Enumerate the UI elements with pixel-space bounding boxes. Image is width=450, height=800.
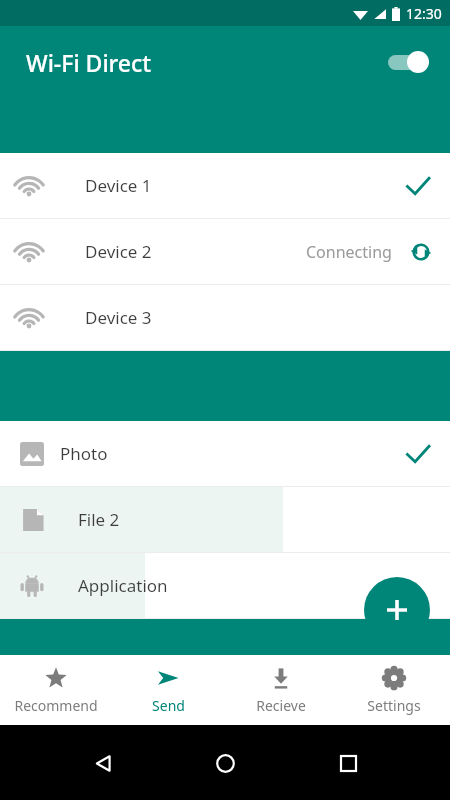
button[interactable]: Application	[0, 553, 450, 618]
staticText: Device 3	[85, 306, 152, 329]
staticText: Application	[78, 574, 168, 597]
staticText: Send	[152, 696, 185, 715]
staticText: Recieve	[256, 696, 306, 715]
staticText: Photo	[60, 442, 108, 465]
button[interactable]: Recents	[328, 743, 368, 783]
button[interactable]: Wi-Fi Direct toggle	[384, 45, 436, 79]
button[interactable]: Recommend	[0, 655, 112, 725]
button[interactable]: Add	[364, 577, 430, 643]
staticText: Connecting	[306, 241, 392, 263]
button[interactable]: Device 3	[0, 285, 450, 350]
button[interactable]: Send	[112, 655, 224, 725]
button[interactable]: Photo	[0, 421, 450, 486]
button[interactable]: Device 1	[0, 153, 450, 218]
staticText: Wi-Fi Direct	[26, 47, 152, 78]
staticText: Settings	[367, 696, 421, 715]
button[interactable]: File 2	[0, 487, 450, 552]
button[interactable]: Device 2	[0, 219, 450, 284]
staticText: 12:30	[406, 4, 442, 23]
staticText: Recommend	[14, 696, 98, 715]
staticText: File 2	[78, 508, 120, 531]
button[interactable]: Home	[205, 743, 245, 783]
staticText: Device 2	[85, 240, 152, 263]
button[interactable]: Settings	[337, 655, 450, 725]
staticText: Device 1	[85, 174, 152, 197]
button[interactable]: Back	[83, 743, 123, 783]
button[interactable]: Recieve	[224, 655, 337, 725]
button[interactable]: Refresh	[406, 237, 436, 267]
